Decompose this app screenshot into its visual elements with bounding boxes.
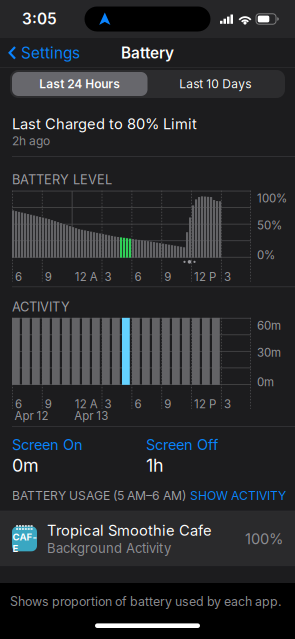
staticText: 3 [224,397,231,411]
staticText: 50% [257,218,282,232]
staticText: 12 A [75,270,98,284]
button[interactable]: SHOW ACTIVITY [190,488,286,503]
staticText: 0% [257,248,275,262]
staticText: 9 [164,397,171,411]
staticText: 12 A [75,397,98,411]
staticText: 3 [105,270,112,284]
staticText: 60m [257,319,281,332]
staticText: 2h ago [12,134,50,148]
staticText: Apr 12 [14,409,48,423]
staticText: Background Activity [47,540,171,556]
staticText: Battery [121,44,174,62]
staticText: 3:05 [22,10,57,28]
staticText: 1h [146,454,164,476]
staticText: 9 [45,270,52,284]
staticText: 0m [12,454,39,476]
staticText: 3 [224,270,231,284]
staticText: CAFE [12,531,36,554]
staticText: BATTERY USAGE (5 AM–6 AM) [12,488,186,503]
staticText: 30m [257,345,281,359]
button[interactable]: Screen Off [146,436,218,476]
staticText: 9 [45,397,52,411]
button[interactable]: CAFE [0,511,295,566]
button[interactable]: Last 10 Days [147,72,283,96]
staticText: Last Charged to 80% Limit [12,115,197,133]
staticText: 6 [134,270,141,284]
staticText: BATTERY LEVEL [12,172,112,187]
staticText: 12 P [194,397,216,411]
staticText: 6 [134,397,141,411]
staticText: Last 10 Days [179,77,251,91]
staticText: Last 24 Hours [39,77,120,91]
staticText: 100% [245,530,283,548]
staticText: 3 [105,397,112,411]
staticText: ACTIVITY [12,299,70,315]
staticText: 100% [257,191,287,205]
staticText: Screen On [12,436,83,453]
staticText: Settings [21,44,80,62]
staticText: Tropical Smoothie Cafe [47,521,212,539]
staticText: 6 [15,397,22,411]
staticText: SHOW ACTIVITY [190,488,286,503]
staticText: 9 [164,270,171,284]
staticText: Apr 13 [74,409,108,423]
staticText: 12 P [194,270,216,284]
staticText: Shows proportion of battery used by each… [10,594,282,609]
button[interactable]: Last 24 Hours [12,72,147,96]
button[interactable]: Screen On [12,436,146,476]
staticText: Screen Off [146,436,218,453]
staticText: 6 [15,270,22,284]
staticText: 0m [257,375,274,389]
button[interactable]: Settings [0,40,88,66]
